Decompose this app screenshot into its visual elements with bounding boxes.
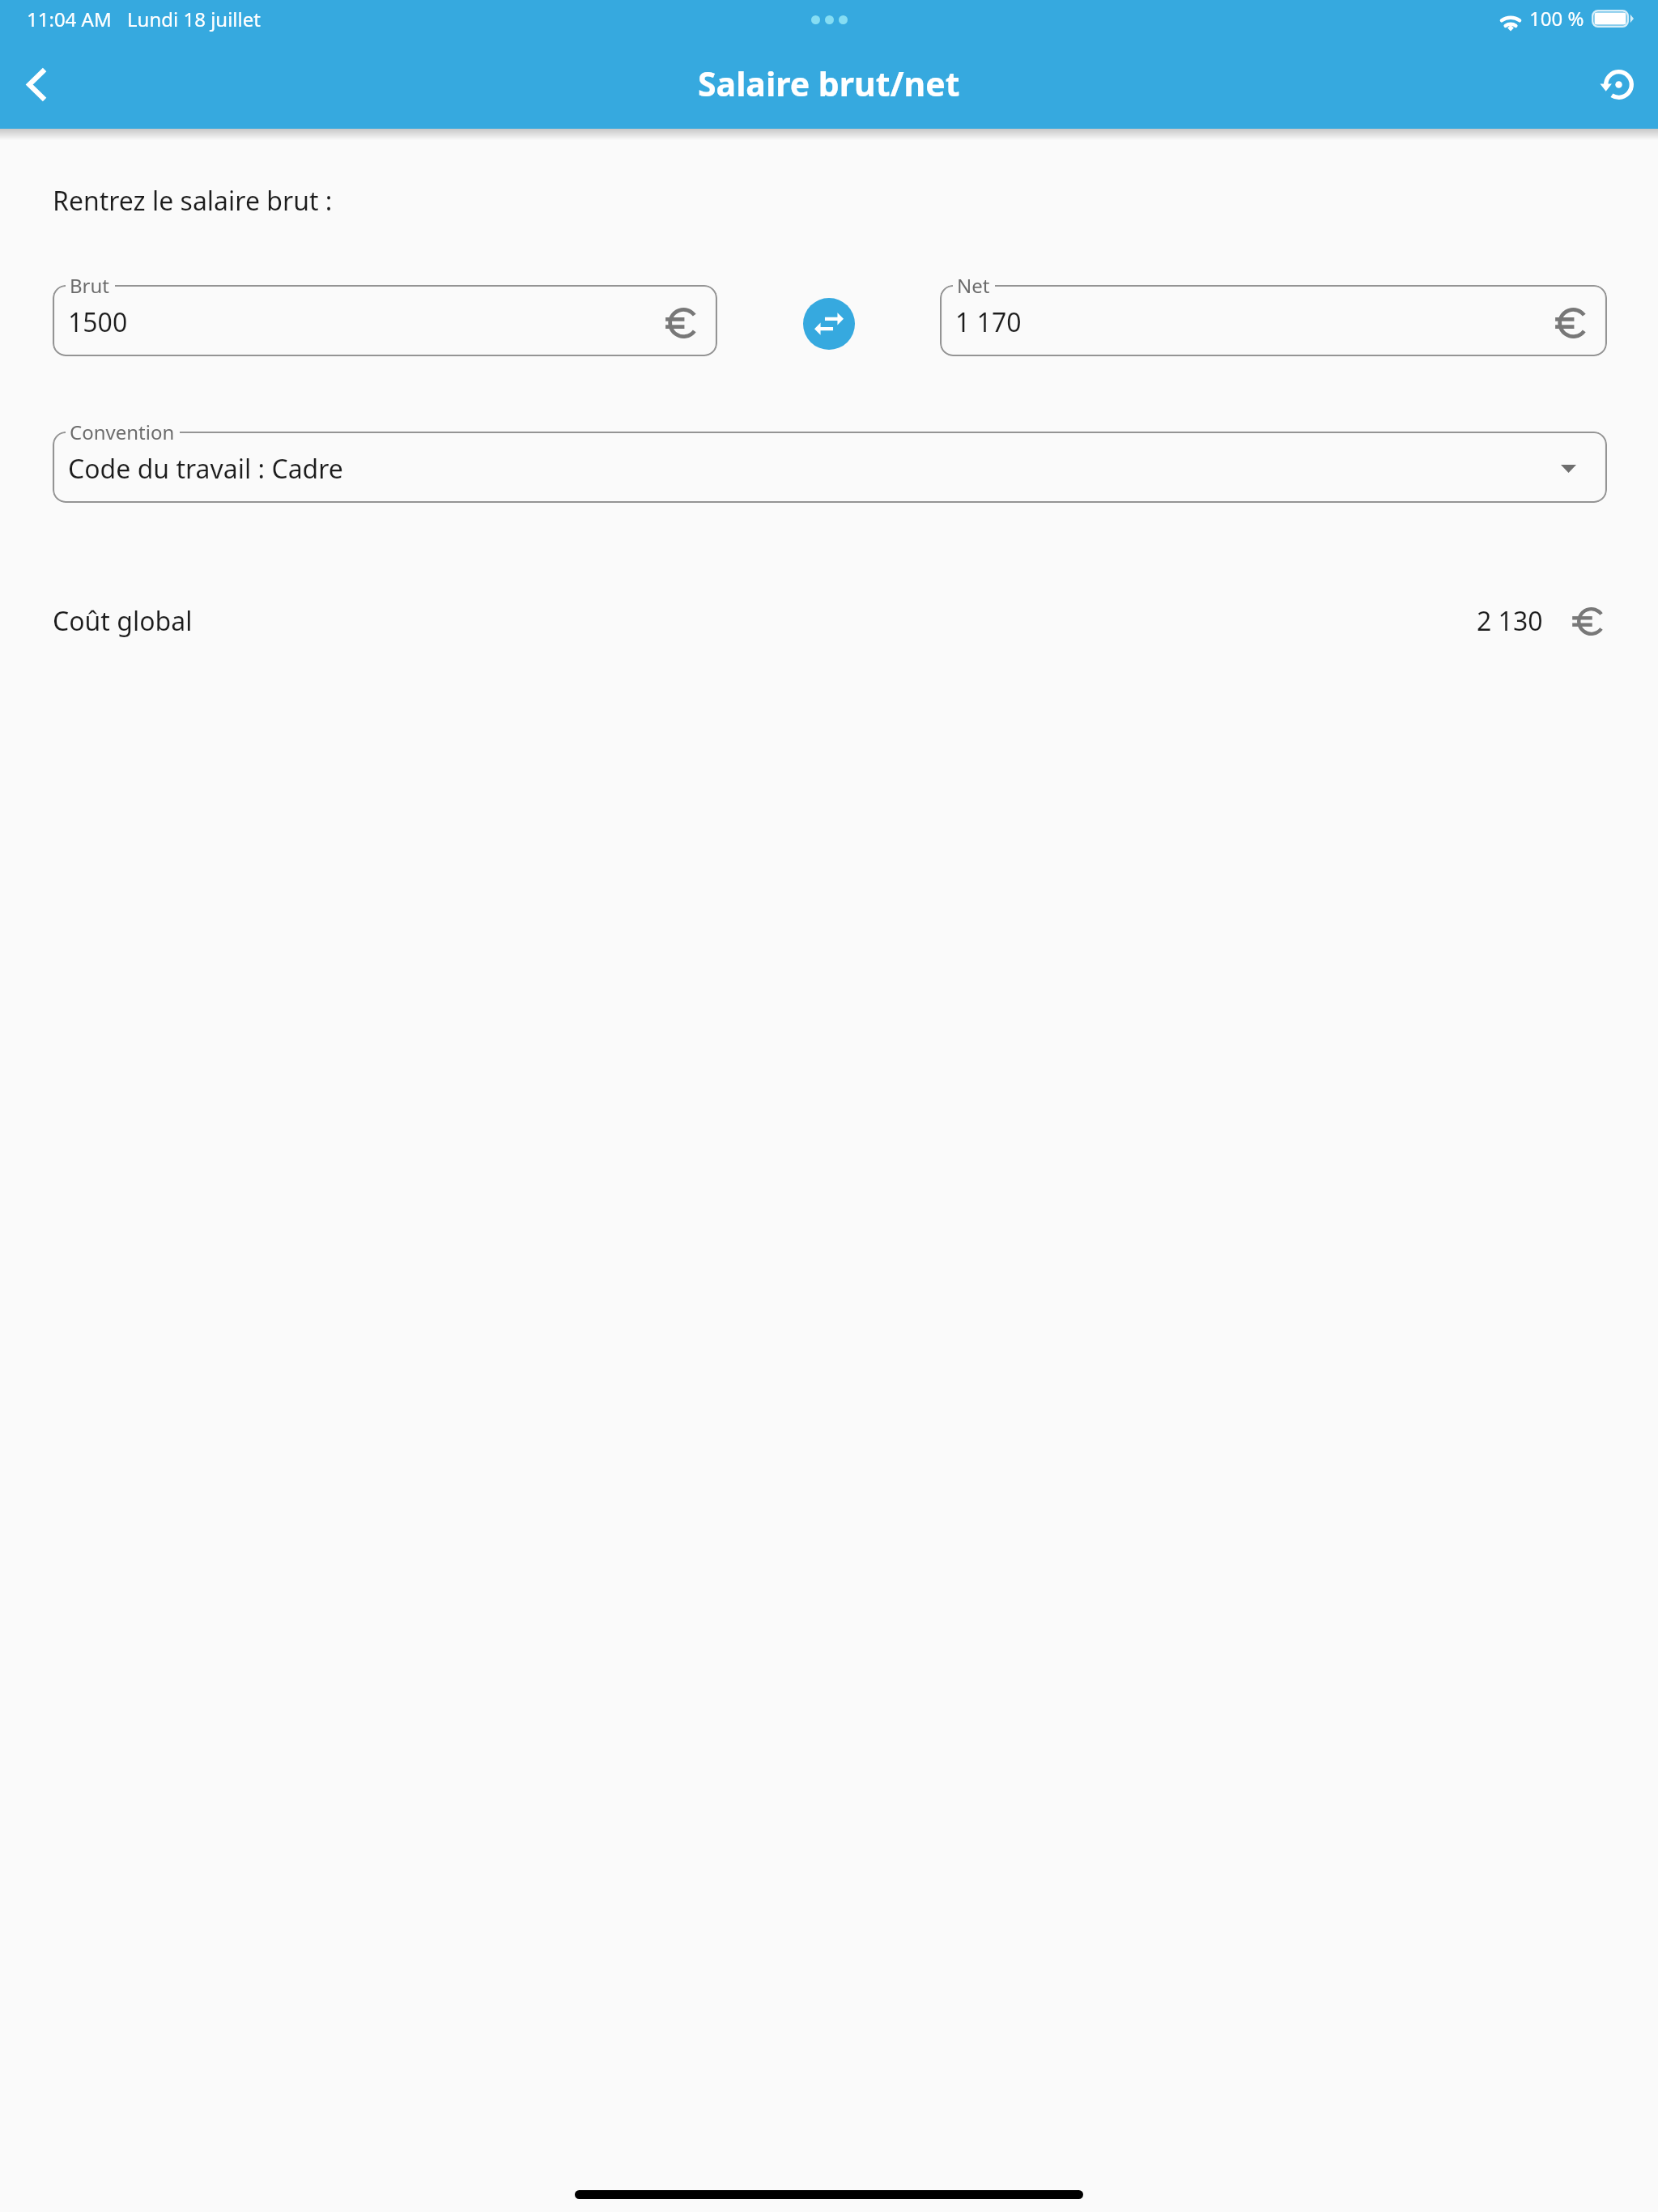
staticText: Code du travail : Cadre bbox=[68, 451, 343, 487]
staticText: Convention bbox=[70, 419, 175, 445]
button[interactable]: Retour bbox=[0, 45, 74, 129]
staticText: Lundi 18 juillet bbox=[127, 6, 261, 32]
staticText: 2 130 bbox=[1477, 603, 1543, 639]
button[interactable]: Réinitialiser bbox=[1584, 45, 1658, 129]
staticText: Rentrez le salaire brut : bbox=[53, 183, 333, 219]
button[interactable]: 1 170 bbox=[940, 285, 1607, 356]
staticText: Salaire brut/net bbox=[698, 61, 960, 106]
staticText: Coût global bbox=[53, 603, 193, 639]
button[interactable]: Code du travail : Cadre bbox=[53, 432, 1607, 503]
staticText: 11:04 AM bbox=[27, 6, 112, 32]
staticText: 100 % bbox=[1529, 5, 1584, 32]
staticText: 1 170 bbox=[955, 304, 1022, 340]
button[interactable]: Inverser brut et net bbox=[803, 298, 855, 350]
staticText: 1500 bbox=[68, 304, 128, 340]
button[interactable]: 1500 bbox=[53, 285, 717, 356]
staticText: Brut bbox=[70, 272, 110, 299]
staticText: Net bbox=[957, 272, 990, 299]
